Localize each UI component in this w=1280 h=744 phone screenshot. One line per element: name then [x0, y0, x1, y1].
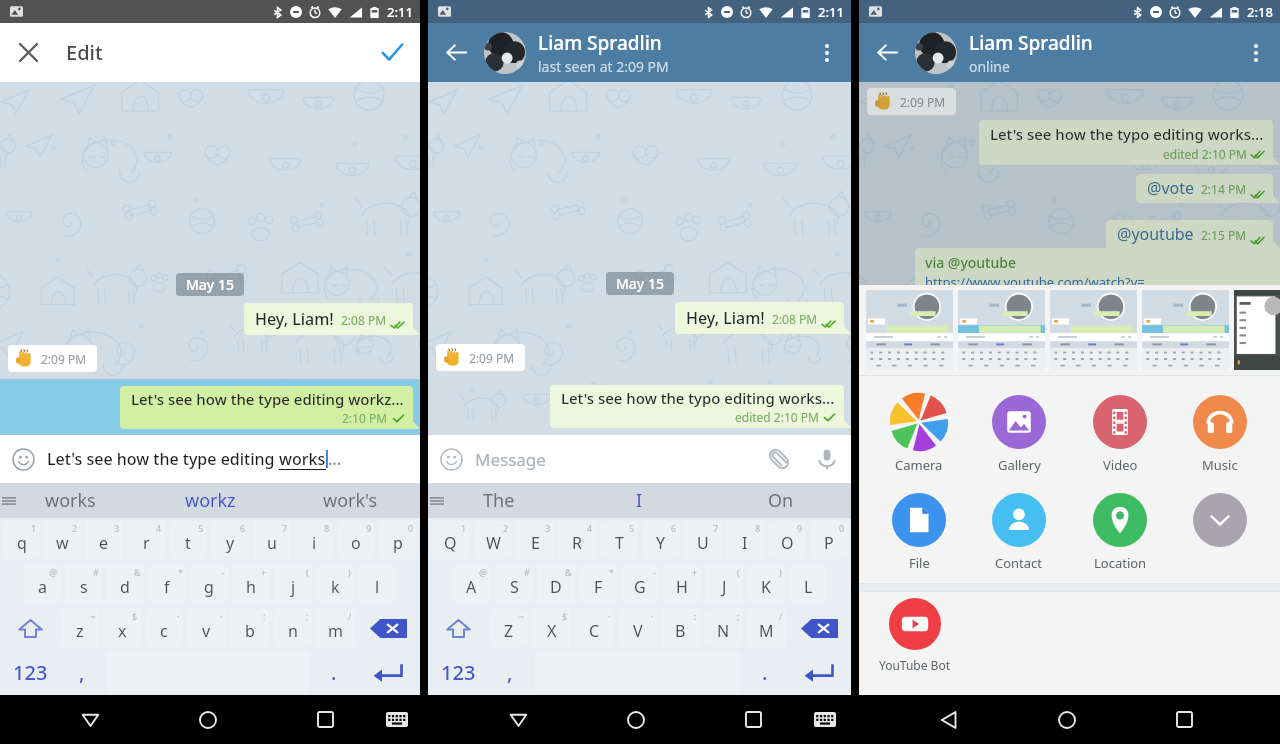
- button[interactable]: y: [211, 521, 249, 559]
- button[interactable]: u: [253, 521, 291, 559]
- button[interactable]: .: [742, 650, 788, 695]
- button[interactable]: R: [558, 521, 596, 559]
- button[interactable]: Recents: [730, 695, 776, 744]
- button[interactable]: Back: [428, 23, 484, 82]
- button[interactable]: work's: [280, 483, 420, 518]
- button[interactable]: Recents: [302, 695, 348, 744]
- button[interactable]: More options: [803, 23, 851, 82]
- button[interactable]: t: [169, 521, 207, 559]
- button[interactable]: Shift: [1, 606, 59, 650]
- button[interactable]: Photo: [958, 290, 1045, 370]
- button[interactable]: Cancel: [0, 23, 56, 82]
- button[interactable]: e: [85, 521, 123, 559]
- button[interactable]: C: [575, 609, 614, 647]
- button[interactable]: Back: [495, 695, 541, 744]
- button[interactable]: r: [127, 521, 165, 559]
- button[interactable]: Photo: [1050, 290, 1137, 370]
- button[interactable]: Photo: [866, 290, 953, 370]
- button[interactable]: m: [316, 609, 355, 647]
- button[interactable]: h: [232, 565, 270, 603]
- button[interactable]: Y: [642, 521, 680, 559]
- button[interactable]: c: [145, 609, 183, 647]
- button[interactable]: d: [106, 565, 144, 603]
- button[interactable]: On: [710, 483, 851, 518]
- button[interactable]: S: [495, 565, 533, 603]
- button[interactable]: P: [810, 521, 848, 559]
- button[interactable]: I: [569, 483, 710, 518]
- button[interactable]: .: [311, 650, 357, 695]
- button[interactable]: n: [273, 609, 312, 647]
- button[interactable]: Switch keyboard: [376, 695, 418, 744]
- button[interactable]: W: [474, 521, 512, 559]
- button[interactable]: workz: [140, 483, 280, 518]
- button[interactable]: z: [61, 609, 99, 647]
- button[interactable]: g: [190, 565, 228, 603]
- button[interactable]: File: [879, 493, 959, 572]
- button[interactable]: Contact: [979, 493, 1059, 572]
- button[interactable]: D: [537, 565, 575, 603]
- button[interactable]: X: [532, 609, 571, 647]
- button[interactable]: E: [516, 521, 554, 559]
- button[interactable]: Emoji: [0, 436, 47, 483]
- button[interactable]: Emoji: [428, 436, 475, 483]
- button[interactable]: works: [0, 483, 140, 518]
- button[interactable]: q: [3, 521, 40, 559]
- button[interactable]: More: [1180, 493, 1260, 547]
- button[interactable]: p: [379, 521, 417, 559]
- button[interactable]: M: [747, 609, 786, 647]
- button[interactable]: Attach: [755, 435, 803, 483]
- button[interactable]: ,: [59, 650, 105, 695]
- button[interactable]: Back: [859, 23, 915, 82]
- button[interactable]: H: [663, 565, 701, 603]
- button[interactable]: Camera: [892, 395, 946, 449]
- button[interactable]: v: [187, 609, 226, 647]
- button[interactable]: 123: [429, 650, 487, 695]
- button[interactable]: l: [358, 565, 396, 603]
- button[interactable]: Q: [431, 521, 470, 559]
- button[interactable]: Let's see how the type editing workz...: [0, 379, 420, 435]
- button[interactable]: f: [148, 565, 186, 603]
- button[interactable]: b: [230, 609, 269, 647]
- button[interactable]: G: [621, 565, 659, 603]
- button[interactable]: w: [44, 521, 81, 559]
- button[interactable]: Home: [1044, 695, 1090, 744]
- button[interactable]: Location: [1080, 493, 1160, 572]
- button[interactable]: 123: [1, 650, 59, 695]
- button[interactable]: Enter: [357, 650, 419, 695]
- button[interactable]: L: [789, 565, 827, 603]
- button[interactable]: k: [316, 565, 354, 603]
- button[interactable]: Music: [1180, 395, 1260, 474]
- button[interactable]: Back: [926, 695, 972, 744]
- button[interactable]: YouTube Bot: [876, 598, 954, 673]
- button[interactable]: F: [579, 565, 617, 603]
- button[interactable]: ,: [487, 650, 533, 695]
- button[interactable]: K: [747, 565, 785, 603]
- button[interactable]: Photo: [1234, 290, 1280, 370]
- button[interactable]: Camera: [879, 395, 959, 474]
- button[interactable]: The: [428, 483, 569, 518]
- button[interactable]: Shift: [429, 606, 487, 650]
- button[interactable]: Recents: [1161, 695, 1207, 744]
- button[interactable]: j: [274, 565, 312, 603]
- button[interactable]: o: [337, 521, 375, 559]
- button[interactable]: N: [704, 609, 743, 647]
- button[interactable]: Enter: [788, 650, 850, 695]
- button[interactable]: Gallery: [979, 395, 1059, 474]
- button[interactable]: s: [65, 565, 102, 603]
- button[interactable]: U: [684, 521, 722, 559]
- button[interactable]: Z: [489, 609, 528, 647]
- button[interactable]: Photo: [1142, 290, 1229, 370]
- button[interactable]: I: [726, 521, 764, 559]
- button[interactable]: Backspace: [788, 606, 850, 650]
- button[interactable]: Back: [67, 695, 113, 744]
- button[interactable]: Backspace: [357, 606, 419, 650]
- button[interactable]: V: [618, 609, 657, 647]
- button[interactable]: A: [452, 565, 491, 603]
- button[interactable]: Video: [1080, 395, 1160, 474]
- button[interactable]: More options: [1232, 23, 1280, 82]
- button[interactable]: Switch keyboard: [804, 695, 846, 744]
- button[interactable]: J: [705, 565, 743, 603]
- button[interactable]: O: [768, 521, 806, 559]
- button[interactable]: Voice message: [803, 435, 851, 483]
